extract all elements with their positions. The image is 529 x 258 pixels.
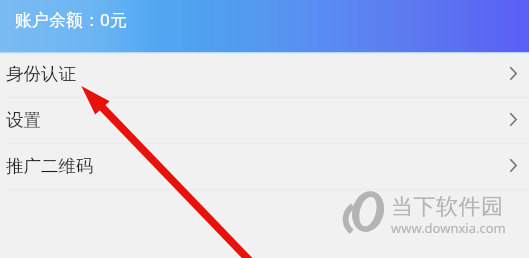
- staticText: 设置: [6, 109, 41, 131]
- button[interactable]: 设置: [0, 98, 529, 143]
- staticText: 推广二维码: [6, 155, 94, 177]
- staticText: www.downxia.com: [391, 219, 506, 237]
- button[interactable]: 身份认证: [0, 52, 529, 97]
- staticText: 当下软件园: [391, 193, 504, 221]
- staticText: 账户余额：0元: [15, 8, 127, 31]
- other: 打开设置: [510, 113, 517, 126]
- button[interactable]: 推广二维码: [0, 144, 529, 189]
- other: 打开推广二维码: [510, 159, 517, 172]
- other: 打开身份认证: [510, 67, 517, 80]
- staticText: 身份认证: [6, 63, 76, 85]
